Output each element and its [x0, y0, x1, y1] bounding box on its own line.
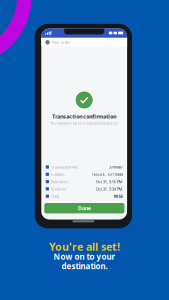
staticText: Oct 31, 3:34 PM	[96, 186, 123, 191]
staticText: $9.55	[114, 193, 123, 199]
staticText: Total	[51, 193, 59, 199]
staticText: Your transaction has been successfully c…	[51, 122, 118, 125]
staticText: You're all set!	[49, 239, 120, 254]
staticText: destination.	[61, 261, 107, 271]
button[interactable]: Done	[44, 203, 124, 213]
staticText: Done	[78, 205, 91, 212]
staticText: 37VX487	[109, 164, 123, 170]
staticText: Oct 31, 3:16 PM	[96, 179, 123, 184]
staticText: Transaction confirmation	[52, 113, 116, 120]
staticText: End time	[51, 186, 66, 191]
staticText: Now on to your	[53, 251, 115, 262]
staticText: Contact	[51, 172, 64, 177]
staticText: Start time	[51, 179, 68, 184]
staticText: Transaction No	[51, 164, 77, 170]
staticText: Tesco E - GTT9344	[92, 172, 123, 177]
staticText: Your order	[52, 40, 71, 45]
